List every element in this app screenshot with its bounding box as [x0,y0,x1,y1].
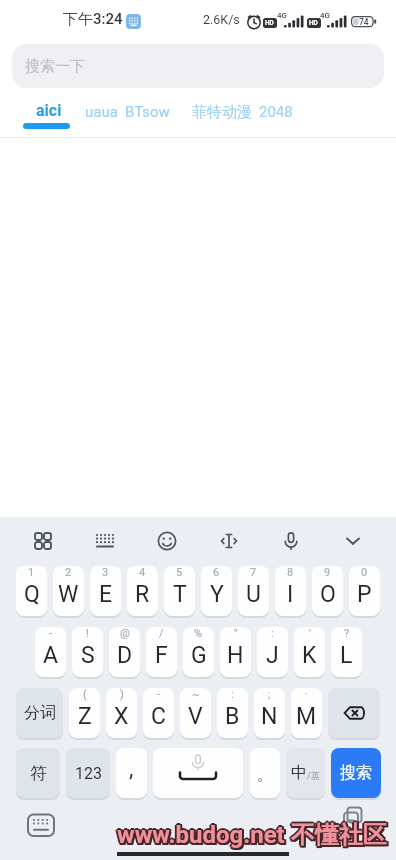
button[interactable]: 搜索 [331,748,381,798]
button[interactable] [31,529,55,553]
staticText: P [357,581,372,608]
button[interactable]: 中 [286,748,325,798]
staticText: D [117,642,133,669]
button[interactable]: 9 [312,566,343,616]
staticText: www.budog.net 不懂社区 [115,820,385,850]
button[interactable]: , [116,748,147,798]
staticText: 。 [257,765,273,785]
staticText: ! [86,627,89,640]
staticText: Q [24,581,40,608]
staticText: 8 [287,566,294,579]
staticText: B [225,703,240,730]
button[interactable]: 0 [349,566,380,616]
button[interactable]: 菲特动漫 [192,99,252,118]
staticText: E [99,581,113,608]
staticText: 5 [176,566,183,579]
button[interactable]: 符 [16,748,60,798]
staticText: L [340,642,353,669]
staticText: H [227,642,244,669]
staticText: HD [265,19,274,27]
button[interactable]: - [143,688,174,738]
staticText: 3 [102,566,109,579]
staticText: J [266,642,279,669]
staticText: 4 [139,566,146,579]
staticText: ( [83,688,87,701]
button[interactable] [155,529,179,553]
staticText: K [302,642,317,669]
button[interactable] [328,688,380,738]
button[interactable] [217,529,241,553]
button[interactable]: 8 [275,566,306,616]
staticText: www.budog.net 不懂社区 [116,819,386,849]
staticText: T [173,581,187,608]
button[interactable]: 7 [238,566,269,616]
staticText: ; [268,688,271,701]
staticText: uaua [85,103,118,121]
button[interactable] [341,806,367,832]
staticText: HD [309,19,318,27]
button[interactable]: aici [24,98,74,130]
staticText: W [58,581,79,608]
staticText: R [135,581,150,608]
button[interactable]: 1 [16,566,47,616]
staticText: O [320,581,336,608]
button[interactable]: @ [109,627,140,677]
button[interactable]: uaua [85,99,118,117]
staticText: 9 [324,566,331,579]
staticText: M [296,703,317,730]
button[interactable]: ! [72,627,103,677]
staticText: 2048 [259,103,293,121]
button[interactable]: 2 [53,566,84,616]
staticText: 搜索 [340,763,372,783]
staticText: aici [36,101,62,120]
button[interactable]: ) [106,688,137,738]
button[interactable]: % [183,627,214,677]
button[interactable] [279,529,303,553]
button[interactable]: / [146,627,177,677]
button[interactable]: 分词 [16,688,63,738]
button[interactable]: BTsow [125,99,170,117]
staticText: X [114,703,129,730]
button[interactable]: ( [69,688,100,738]
staticText: www.budog.net 不懂社区 [119,819,389,849]
button[interactable] [153,748,243,798]
staticText: www.budog.net 不懂社区 [116,822,386,852]
button[interactable]: " [220,627,251,677]
staticText: @ [120,627,130,640]
staticText: 1 [28,566,35,579]
button[interactable]: 。 [250,748,280,798]
button[interactable]: ' [294,627,325,677]
button[interactable]: 2048 [259,99,293,117]
button[interactable]: - [35,627,66,677]
staticText: S [81,642,95,669]
staticText: 7 [250,566,257,579]
button[interactable]: 6 [201,566,232,616]
button[interactable]: 3 [90,566,121,616]
staticText: www.budog.net 不懂社区 [119,820,389,850]
button[interactable]: 搜索一下 [12,44,384,88]
staticText: 下午3:24 [63,10,123,29]
staticText: 符 [30,763,47,784]
staticText: www.budog.net 不懂社区 [119,822,389,852]
staticText: www.budog.net 不懂社区 [117,820,387,850]
button[interactable] [93,529,117,553]
button[interactable]: 123 [66,748,110,798]
staticText: C [151,703,166,730]
button[interactable]: ; [254,688,285,738]
button[interactable]: 4 [127,566,158,616]
button[interactable]: · [291,688,322,738]
staticText: % [194,627,203,640]
staticText: ' [309,627,311,640]
button[interactable]: : [257,627,288,677]
button[interactable]: ? [331,627,362,677]
staticText: 0 [361,566,368,579]
button[interactable]: 5 [164,566,195,616]
button[interactable]: : [217,688,248,738]
staticText: 4G [277,11,287,20]
staticText: : [271,627,274,640]
staticText: ? [344,627,350,640]
button[interactable]: ~ [180,688,211,738]
staticText: , [129,756,134,782]
button[interactable] [341,529,365,553]
button[interactable] [27,813,55,838]
